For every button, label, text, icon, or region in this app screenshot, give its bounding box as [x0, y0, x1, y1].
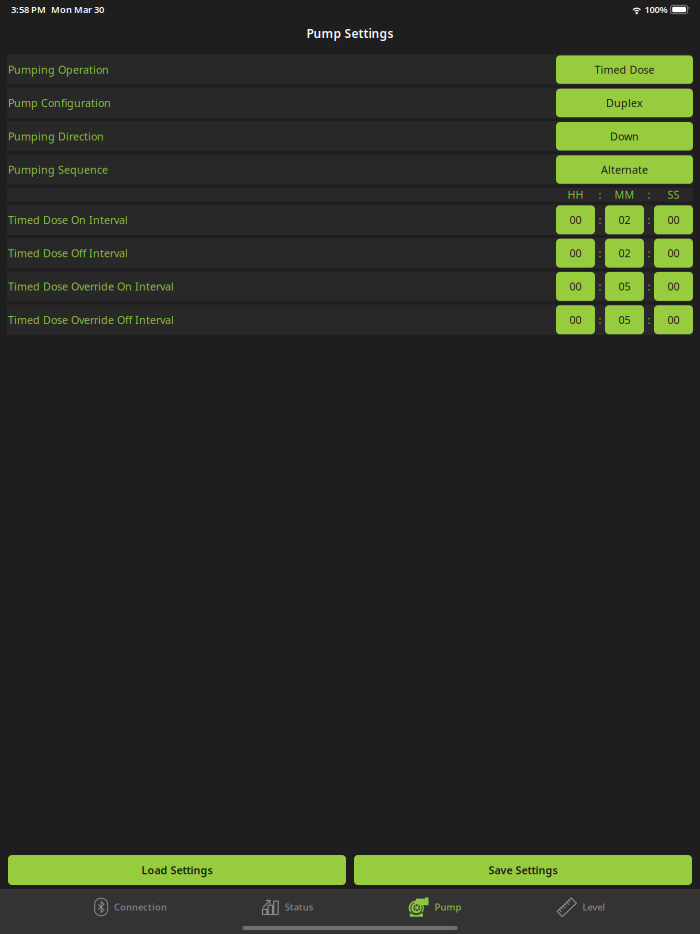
staticText: Alternate [601, 162, 648, 177]
button[interactable]: Alternate [556, 155, 693, 184]
staticText: : [598, 213, 601, 227]
staticText: 00 [569, 246, 581, 260]
staticText: : [647, 188, 650, 202]
button[interactable]: 00 [556, 272, 595, 301]
staticText: Mon Mar 30 [51, 3, 104, 16]
staticText: 05 [618, 279, 630, 294]
button[interactable]: Timed Dose [556, 55, 693, 84]
staticText: SS [667, 188, 679, 202]
staticText: : [647, 246, 650, 260]
button[interactable]: 00 [654, 205, 693, 234]
button[interactable]: Level [556, 893, 606, 921]
button[interactable]: 05 [605, 272, 644, 301]
staticText: : [598, 188, 601, 202]
staticText: 02 [618, 246, 630, 260]
staticText: : [647, 279, 650, 294]
staticText: Load Settings [141, 863, 212, 877]
button[interactable]: 00 [556, 305, 595, 334]
staticText: Pump [434, 901, 461, 913]
staticText: : [647, 313, 650, 327]
staticText: Connection [114, 901, 167, 913]
staticText: 00 [569, 279, 581, 294]
button[interactable]: Load Settings [8, 855, 346, 885]
staticText: Timed Dose Off Interval [8, 246, 128, 260]
staticText: Pumping Direction [8, 129, 104, 143]
button[interactable]: 00 [654, 239, 693, 268]
staticText: Status [285, 901, 314, 913]
staticText: Down [610, 129, 639, 143]
staticText: 00 [667, 313, 679, 327]
staticText: 02 [618, 213, 630, 227]
staticText: Duplex [606, 96, 643, 110]
button[interactable]: 05 [605, 305, 644, 334]
button[interactable]: Duplex [556, 89, 693, 117]
staticText: : [647, 213, 650, 227]
staticText: 3:58 PM [11, 3, 46, 16]
staticText: Pumping Operation [8, 63, 109, 77]
staticText: 00 [667, 279, 679, 294]
staticText: 00 [667, 246, 679, 260]
button[interactable]: Pump [409, 893, 461, 921]
staticText: Save Settings [488, 863, 557, 877]
button[interactable]: 02 [605, 239, 644, 268]
button[interactable]: Down [556, 122, 693, 150]
staticText: 00 [569, 213, 581, 227]
staticText: 00 [667, 213, 679, 227]
staticText: MM [614, 188, 634, 202]
button[interactable]: 00 [556, 205, 595, 234]
staticText: Timed Dose Override On Interval [8, 279, 174, 294]
staticText: Pump Configuration [8, 96, 111, 110]
staticText: : [598, 279, 601, 294]
staticText: HH [567, 188, 583, 202]
button[interactable]: 00 [654, 305, 693, 334]
button[interactable]: Connection [94, 893, 167, 921]
staticText: Timed Dose [594, 63, 654, 77]
staticText: Timed Dose On Interval [8, 213, 128, 227]
staticText: : [598, 246, 601, 260]
button[interactable]: Save Settings [354, 855, 692, 885]
staticText: Pump Settings [306, 25, 393, 41]
staticText: Timed Dose Override Off Interval [8, 313, 174, 327]
staticText: 100% [645, 3, 668, 16]
button[interactable]: 00 [654, 272, 693, 301]
staticText: Pumping Sequence [8, 162, 108, 177]
staticText: : [598, 313, 601, 327]
staticText: Level [583, 901, 606, 913]
button[interactable]: 00 [556, 239, 595, 268]
button[interactable]: Status [262, 893, 314, 921]
button[interactable]: 02 [605, 205, 644, 234]
staticText: 00 [569, 313, 581, 327]
staticText: 05 [618, 313, 630, 327]
